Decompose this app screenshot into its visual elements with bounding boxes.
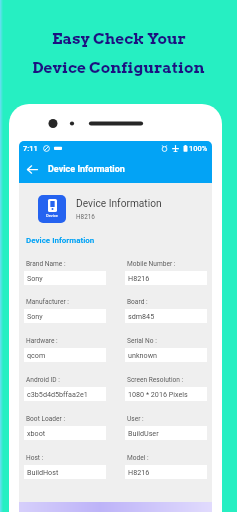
button[interactable]: Android ID : <box>24 376 106 401</box>
button[interactable]: Host : <box>24 454 106 479</box>
staticText: Board : <box>127 298 148 306</box>
staticText: Device Configuration <box>32 58 205 77</box>
button[interactable]: User : <box>125 415 207 440</box>
staticText: 1080 * 2016 Pixels <box>128 390 188 398</box>
button[interactable]: Mobile Number : <box>125 260 207 285</box>
staticText: Android ID : <box>26 376 60 384</box>
staticText: Hardware : <box>26 337 58 345</box>
staticText: 7:11 <box>23 144 38 153</box>
button[interactable]: Manufacturer : <box>24 298 106 323</box>
staticText: Manufacturer : <box>26 298 69 306</box>
staticText: BuildHost <box>27 468 59 476</box>
button[interactable]: Hardware : <box>24 337 106 362</box>
staticText: Brand Name : <box>26 260 66 268</box>
staticText: Device Information <box>26 236 95 245</box>
staticText: Easy Check Your <box>52 29 186 48</box>
button[interactable]: Boot Loader : <box>24 415 106 440</box>
staticText: Host : <box>26 454 44 462</box>
button[interactable]: Board : <box>125 298 207 323</box>
staticText: Device Information <box>48 164 125 175</box>
staticText: c3b5d4d5bffaa2e1 <box>27 390 88 398</box>
staticText: H8216 <box>128 468 150 476</box>
staticText: User : <box>127 415 144 423</box>
staticText: qcom <box>27 351 46 359</box>
staticText: Sony <box>27 274 43 282</box>
staticText: unknown <box>128 351 158 359</box>
staticText: Model : <box>127 454 149 462</box>
staticText: Serial No : <box>127 337 157 345</box>
staticText: Device Information <box>76 198 162 210</box>
staticText: Boot Loader : <box>26 415 66 423</box>
button[interactable]: Screen Resolution : <box>125 376 207 401</box>
staticText: Screen Resolution : <box>127 376 184 384</box>
button[interactable]: Model : <box>125 454 207 479</box>
staticText: H8216 <box>128 274 150 282</box>
button[interactable]: Device icon <box>38 195 66 223</box>
staticText: xboot <box>27 429 46 437</box>
staticText: H8216 <box>76 213 95 221</box>
button[interactable]: Serial No : <box>125 337 207 362</box>
staticText: Mobile Number : <box>127 260 176 268</box>
staticText: BuildUser <box>128 429 159 437</box>
staticText: Device <box>46 213 58 218</box>
button[interactable]: Back <box>24 161 40 177</box>
staticText: sdm845 <box>128 312 155 320</box>
button[interactable]: Brand Name : <box>24 260 106 285</box>
staticText: 100% <box>189 144 208 153</box>
staticText: Sony <box>27 312 43 320</box>
